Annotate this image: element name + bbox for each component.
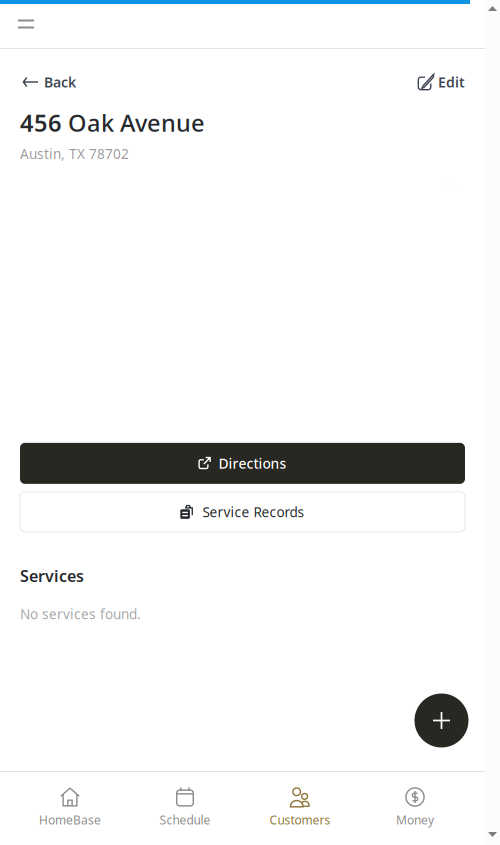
button[interactable]: Money — [357, 787, 472, 828]
staticText: HomeBase — [39, 812, 101, 828]
staticText: Customers — [269, 812, 330, 828]
staticText: Edit — [438, 72, 465, 92]
button[interactable]: Directions — [20, 443, 465, 484]
staticText: 456 Oak Avenue — [20, 107, 205, 138]
staticText: Service Records — [202, 503, 304, 521]
button[interactable]: Schedule — [127, 787, 242, 828]
staticText: Services — [20, 565, 84, 587]
button[interactable]: Edit — [418, 69, 465, 95]
button[interactable]: Service Records — [20, 492, 465, 532]
staticText: Money — [396, 812, 434, 828]
staticText: Directions — [218, 454, 286, 473]
button[interactable]: Back — [20, 69, 76, 95]
button[interactable]: Customers — [242, 787, 357, 828]
button[interactable]: Add — [414, 693, 468, 747]
button[interactable]: HomeBase — [12, 787, 127, 828]
staticText: No services found. — [20, 605, 141, 623]
button[interactable]: Menu — [9, 8, 43, 40]
staticText: Back — [44, 72, 76, 92]
staticText: Schedule — [159, 812, 210, 828]
staticText: Austin, TX 78702 — [20, 144, 129, 163]
